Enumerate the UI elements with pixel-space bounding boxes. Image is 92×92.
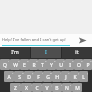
staticText: K [73,74,77,81]
button[interactable]: 7 [56,59,65,70]
staticText: 5 [45,59,47,62]
staticText: Y [50,62,53,69]
staticText: P [86,62,90,69]
staticText: ) [87,71,88,74]
staticText: V [45,85,49,92]
staticText: I [45,49,47,56]
staticText: 1 [8,59,10,62]
staticText: I'm [11,49,19,56]
staticText: A [7,74,11,81]
button[interactable]: & [43,71,52,82]
button[interactable]: I'm [0,47,30,58]
button[interactable]: 2 [10,59,20,70]
button[interactable]: M [72,83,82,92]
staticText: 6 [54,59,56,62]
staticText: M [75,85,80,92]
button[interactable]: # [14,71,24,82]
button[interactable]: ' [21,83,32,92]
button[interactable]: I [31,47,61,58]
staticText: " [19,83,21,86]
button[interactable]: it [62,47,92,58]
button[interactable]: - [52,71,61,82]
staticText: B [55,85,59,92]
staticText: 4 [36,59,38,62]
button[interactable]: 4 [29,59,38,70]
button[interactable]: 1 [0,59,10,70]
staticText: / [42,71,43,74]
button[interactable]: ! [52,83,62,92]
staticText: X [25,85,28,92]
staticText: Q [3,62,7,69]
button[interactable]: ; [42,83,52,92]
staticText: C [35,85,39,92]
button[interactable]: 5 [38,59,47,70]
staticText: 8 [72,59,74,62]
staticText: 0 [90,59,92,62]
staticText: T [41,62,44,69]
button[interactable]: ) [79,71,88,82]
staticText: S [18,74,21,81]
button[interactable]: ( [70,71,79,82]
staticText: ( [78,71,79,74]
staticText: 3 [27,59,29,62]
staticText: ' [31,83,32,86]
staticText: : [41,83,42,86]
staticText: Help! I've fallen and I can't get up! [2,37,66,42]
staticText: U [59,62,63,69]
staticText: * [12,71,14,74]
button[interactable]: + [61,71,70,82]
staticText: L [82,74,85,81]
staticText: W [13,62,18,69]
button[interactable]: 9 [74,59,83,70]
staticText: ? [70,83,72,86]
button[interactable]: Help! I've fallen and I can't get up! [2,34,70,47]
button[interactable]: : [32,83,42,92]
button[interactable]: 0 [83,59,92,70]
button[interactable]: 6 [47,59,56,70]
button[interactable]: * [4,71,14,82]
staticText: D [27,74,31,81]
staticText: Z [14,85,17,92]
staticText: R [32,62,36,69]
staticText: E [23,62,26,69]
staticText: - [60,71,61,74]
staticText: it [75,49,79,56]
staticText: $ [32,71,34,74]
staticText: ! [61,83,62,86]
staticText: 2 [18,59,20,62]
button[interactable]: 3 [20,59,29,70]
button[interactable]: $ [24,71,34,82]
staticText: I [69,62,71,69]
staticText: F [37,74,40,81]
staticText: G [46,74,50,81]
staticText: O [77,62,81,69]
staticText: # [22,71,24,74]
staticText: N [65,85,69,92]
staticText: ; [51,83,52,86]
staticText: J [65,74,67,81]
button[interactable]: " [10,83,21,92]
button[interactable]: ? [62,83,72,92]
staticText: 9 [81,59,83,62]
staticText: H [55,74,59,81]
button[interactable]: 8 [65,59,74,70]
button[interactable]: / [34,71,43,82]
button[interactable]: Send [72,34,92,47]
staticText: + [68,71,70,74]
staticText: & [50,71,52,74]
staticText: 7 [63,59,65,62]
